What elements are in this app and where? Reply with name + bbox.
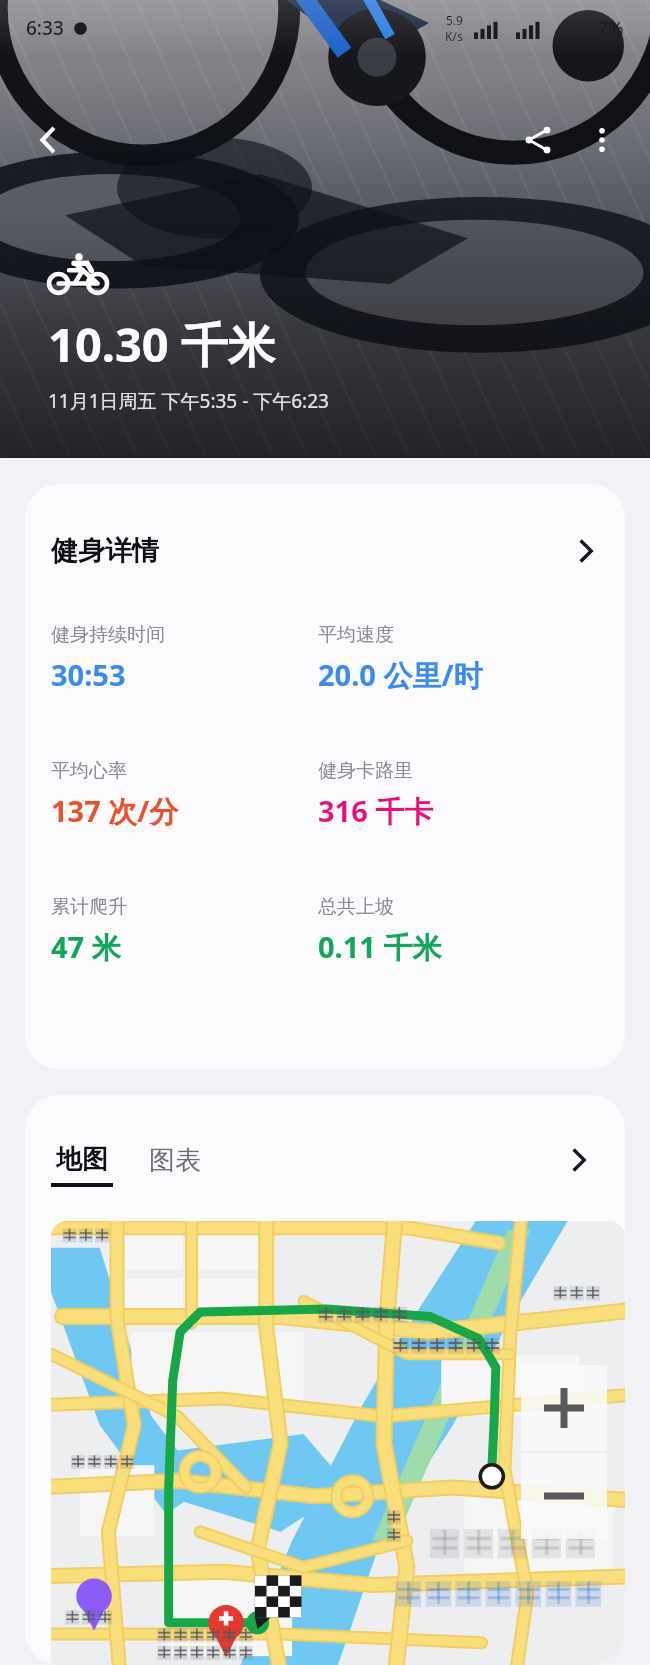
staticText: 累计爬升	[51, 895, 127, 919]
staticText: 11月1日周五 下午5:35 - 下午6:23	[48, 388, 329, 414]
staticText: 20.0 公里/时	[318, 655, 483, 695]
staticText: 地图	[56, 1143, 108, 1176]
staticText: K/s	[445, 28, 463, 44]
button[interactable]: Zoom in	[51, 1221, 625, 1665]
staticText: 10.30 千米	[48, 312, 275, 376]
button[interactable]: 地图	[51, 1143, 113, 1187]
button[interactable]: More options	[570, 108, 634, 172]
button[interactable]: Back	[16, 108, 80, 172]
button[interactable]: Share	[506, 108, 570, 172]
staticText: 总共上坡	[318, 895, 394, 919]
staticText: 47 米	[51, 927, 121, 967]
button[interactable]: Zoom out	[521, 1453, 607, 1539]
staticText: 健身卡路里	[318, 759, 413, 783]
button[interactable]: 图表	[149, 1144, 201, 1177]
staticText: 7%	[598, 16, 624, 41]
button[interactable]: 健身详情	[25, 484, 625, 1069]
staticText: 316 千卡	[318, 791, 434, 831]
staticText: 图表	[149, 1144, 201, 1177]
staticText: 健身详情	[51, 534, 159, 568]
staticText: 平均速度	[318, 623, 394, 647]
staticText: 0.11 千米	[318, 927, 442, 967]
staticText: 5.9	[446, 12, 463, 28]
staticText: 健身持续时间	[51, 623, 165, 647]
staticText: 6:33	[26, 15, 64, 41]
staticText: 30:53	[51, 655, 126, 694]
staticText: 137 次/分	[51, 791, 179, 831]
button[interactable]: Zoom in	[521, 1365, 607, 1451]
button[interactable]: Open map	[559, 1140, 599, 1180]
staticText: 平均心率	[51, 759, 127, 783]
